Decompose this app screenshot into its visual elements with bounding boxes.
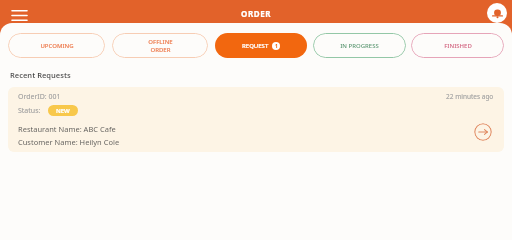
button[interactable]: Notifications: [487, 3, 507, 23]
staticText: OFFLINE ORDER: [148, 38, 173, 54]
staticText: Customer Name: Heilyn Cole: [18, 137, 120, 147]
button[interactable]: OrderID: 001: [8, 87, 504, 152]
staticText: Recent Requests: [10, 70, 71, 80]
staticText: OrderID: 001: [18, 92, 61, 102]
staticText: 1: [275, 43, 278, 50]
button[interactable]: Open order details: [474, 123, 492, 141]
staticText: Status:: [18, 106, 41, 116]
button[interactable]: UPCOMING: [8, 33, 105, 58]
staticText: UPCOMING: [40, 42, 74, 50]
button[interactable]: REQUEST: [215, 33, 307, 58]
staticText: IN PROGRESS: [340, 42, 379, 50]
staticText: REQUEST: [242, 42, 269, 50]
button[interactable]: Menu: [6, 2, 32, 28]
staticText: NEW: [56, 107, 70, 115]
staticText: 22 minutes ago: [446, 92, 494, 101]
button[interactable]: IN PROGRESS: [313, 33, 406, 58]
button[interactable]: OFFLINE ORDER: [112, 33, 208, 58]
staticText: ORDER: [241, 8, 272, 19]
staticText: Restaurant Name: ABC Cafe: [18, 124, 116, 134]
button[interactable]: FINISHED: [411, 33, 504, 58]
staticText: FINISHED: [444, 42, 472, 50]
